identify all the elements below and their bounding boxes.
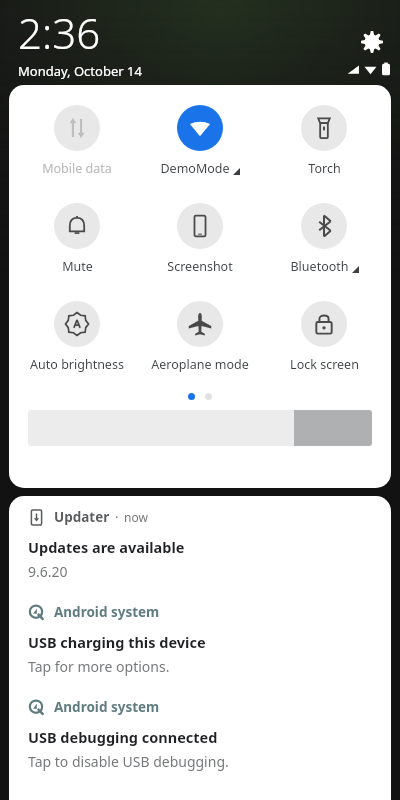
button[interactable]: Bluetooth <box>268 201 380 277</box>
button[interactable]: Settings <box>356 26 388 58</box>
staticText: Bluetooth <box>290 258 349 275</box>
staticText: now <box>124 509 148 525</box>
button[interactable]: Torch <box>268 103 380 179</box>
staticText: 2:36 <box>18 4 101 61</box>
button[interactable]: Android system <box>9 591 391 686</box>
button[interactable]: DemoMode <box>144 103 256 179</box>
staticText: Mute <box>62 258 93 275</box>
staticText: Android system <box>54 698 160 716</box>
staticText: Lock screen <box>290 356 359 373</box>
button[interactable]: Aeroplane mode <box>144 299 256 375</box>
staticText: Torch <box>308 160 341 177</box>
staticText: Tap to disable USB debugging. <box>28 752 229 771</box>
button[interactable]: Screenshot <box>144 201 256 277</box>
staticText: Screenshot <box>167 258 233 275</box>
button[interactable]: Android system <box>9 686 391 781</box>
staticText: 9.6.20 <box>28 562 68 581</box>
button[interactable]: Mute <box>21 201 133 277</box>
staticText: Tap for more options. <box>28 657 170 676</box>
button[interactable]: Mobile data <box>21 103 133 179</box>
staticText: Auto brightness <box>30 356 124 373</box>
staticText: Updater <box>54 508 110 526</box>
staticText: USB charging this device <box>28 632 206 652</box>
staticText: Android system <box>54 603 160 621</box>
button[interactable]: Brightness <box>28 410 372 446</box>
button[interactable]: Auto brightness <box>21 299 133 375</box>
staticText: · <box>115 508 119 526</box>
button[interactable]: Lock screen <box>268 299 380 375</box>
staticText: Aeroplane mode <box>151 356 249 373</box>
staticText: DemoMode <box>160 160 230 177</box>
staticText: Monday, October 14 <box>18 62 142 80</box>
button[interactable]: Updater <box>9 496 391 591</box>
staticText: Mobile data <box>42 160 112 177</box>
staticText: Updates are available <box>28 537 185 557</box>
staticText: USB debugging connected <box>28 727 218 747</box>
